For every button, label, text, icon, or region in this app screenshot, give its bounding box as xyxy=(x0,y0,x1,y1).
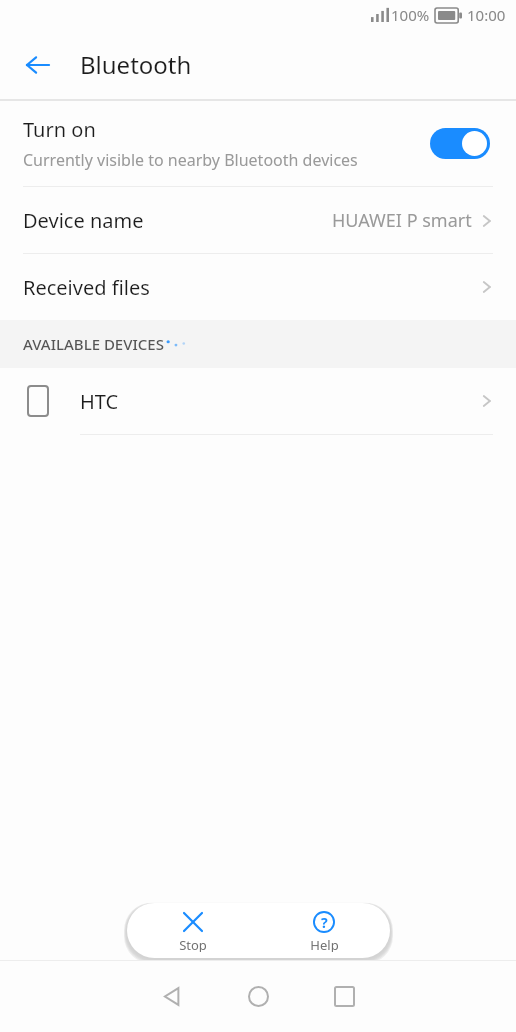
staticText: Device name xyxy=(23,207,144,234)
staticText: Turn on xyxy=(23,116,96,143)
button[interactable]: Stop xyxy=(127,903,258,958)
staticText: HUAWEI P smart xyxy=(332,208,472,233)
button[interactable]: Home xyxy=(215,961,301,1032)
staticText: Received files xyxy=(23,274,150,301)
staticText: Bluetooth xyxy=(80,48,192,81)
staticText: Currently visible to nearby Bluetooth de… xyxy=(23,149,358,171)
button[interactable]: Received files xyxy=(0,254,516,320)
button[interactable]: Recents xyxy=(301,961,387,1032)
staticText: HTC xyxy=(80,388,119,415)
button[interactable]: Turn on xyxy=(0,101,516,186)
button[interactable]: HTC xyxy=(0,368,516,434)
staticText: Help xyxy=(310,936,339,952)
button[interactable]: Back xyxy=(129,961,215,1032)
staticText: Stop xyxy=(179,936,207,952)
staticText: ? xyxy=(321,913,328,932)
staticText: 10:00 xyxy=(467,5,506,25)
staticText: AVAILABLE DEVICES xyxy=(23,334,164,354)
button[interactable]: Bluetooth toggle xyxy=(430,128,490,159)
staticText: 100% xyxy=(391,5,430,25)
button[interactable]: ? xyxy=(258,903,390,958)
button[interactable]: Back xyxy=(14,41,62,89)
button[interactable]: Device name xyxy=(0,187,516,253)
